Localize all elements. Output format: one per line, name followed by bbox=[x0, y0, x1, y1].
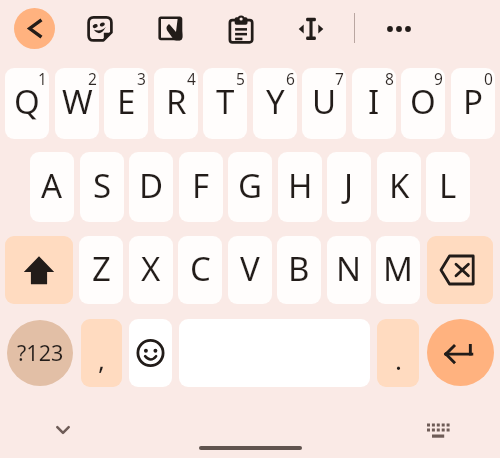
staticText: 0 bbox=[484, 68, 493, 89]
button[interactable]: L bbox=[426, 152, 470, 222]
staticText: Z bbox=[92, 246, 111, 291]
staticText: Y bbox=[266, 79, 285, 124]
staticText: 4 bbox=[187, 68, 196, 89]
staticText: G bbox=[238, 163, 263, 208]
button[interactable]: M bbox=[376, 236, 420, 304]
button[interactable]: J bbox=[327, 152, 371, 222]
button[interactable]: V bbox=[228, 236, 272, 304]
button[interactable]: Back bbox=[14, 8, 55, 49]
staticText: 8 bbox=[385, 68, 394, 89]
button[interactable]: 3 bbox=[104, 68, 148, 139]
button[interactable]: S bbox=[80, 152, 124, 222]
button[interactable]: Enter bbox=[427, 319, 494, 386]
button[interactable]: F bbox=[179, 152, 223, 222]
button[interactable]: GIF bbox=[149, 7, 193, 51]
button[interactable]: 0 bbox=[451, 68, 495, 139]
button[interactable]: X bbox=[129, 236, 173, 304]
button[interactable]: , bbox=[81, 319, 122, 387]
staticText: , bbox=[98, 342, 105, 377]
button[interactable]: 1 bbox=[5, 68, 49, 139]
staticText: H bbox=[288, 163, 313, 208]
staticText: E bbox=[117, 79, 136, 124]
staticText: 3 bbox=[137, 68, 146, 89]
staticText: M bbox=[383, 246, 413, 291]
staticText: R bbox=[166, 79, 187, 124]
button[interactable]: . bbox=[377, 319, 419, 387]
staticText: 9 bbox=[434, 68, 443, 89]
staticText: J bbox=[344, 163, 354, 208]
staticText: 6 bbox=[286, 68, 295, 89]
staticText: T bbox=[216, 79, 235, 124]
button[interactable]: 7 bbox=[302, 68, 346, 139]
staticText: L bbox=[439, 163, 457, 208]
button[interactable]: Backspace bbox=[427, 236, 493, 304]
staticText: X bbox=[141, 246, 161, 291]
button[interactable]: 4 bbox=[154, 68, 198, 139]
button[interactable]: 2 bbox=[55, 68, 99, 139]
staticText: 1 bbox=[38, 68, 47, 89]
staticText: 5 bbox=[236, 68, 245, 89]
staticText: ?123 bbox=[17, 338, 64, 367]
button[interactable]: N bbox=[327, 236, 371, 304]
staticText: . bbox=[395, 342, 402, 377]
staticText: I bbox=[368, 79, 380, 124]
staticText: F bbox=[192, 163, 210, 208]
button[interactable]: B bbox=[277, 236, 321, 304]
button[interactable]: ?123 bbox=[7, 320, 73, 386]
button[interactable]: D bbox=[129, 152, 173, 222]
staticText: V bbox=[240, 246, 260, 291]
staticText: O bbox=[410, 79, 436, 124]
button[interactable]: Move cursor bbox=[289, 7, 333, 51]
button[interactable]: Hide keyboard bbox=[41, 408, 85, 452]
staticText: D bbox=[139, 163, 164, 208]
button[interactable]: A bbox=[30, 152, 74, 222]
button[interactable]: Emoji bbox=[129, 319, 172, 387]
button[interactable]: Clipboard bbox=[219, 7, 263, 51]
staticText: S bbox=[93, 163, 112, 208]
button[interactable]: C bbox=[178, 236, 222, 304]
staticText: W bbox=[62, 79, 93, 124]
button[interactable]: Switch keyboard bbox=[416, 408, 460, 452]
button[interactable]: 6 bbox=[253, 68, 297, 139]
button[interactable]: Shift bbox=[5, 236, 73, 304]
button[interactable]: G bbox=[228, 152, 272, 222]
staticText: A bbox=[41, 163, 63, 208]
button[interactable]: Stickers bbox=[78, 7, 122, 51]
button[interactable]: 9 bbox=[401, 68, 445, 139]
button[interactable]: Z bbox=[79, 236, 123, 304]
button[interactable]: K bbox=[377, 152, 421, 222]
staticText: 2 bbox=[88, 68, 97, 89]
staticText: Q bbox=[14, 79, 40, 124]
staticText: C bbox=[190, 246, 211, 291]
staticText: 7 bbox=[335, 68, 344, 89]
staticText: K bbox=[389, 163, 410, 208]
staticText: U bbox=[312, 79, 337, 124]
button[interactable]: 8 bbox=[352, 68, 396, 139]
button[interactable]: H bbox=[278, 152, 322, 222]
staticText: P bbox=[463, 79, 483, 124]
button[interactable]: More options bbox=[377, 7, 421, 51]
staticText: B bbox=[288, 246, 310, 291]
button[interactable]: 5 bbox=[203, 68, 247, 139]
staticText: N bbox=[336, 246, 362, 291]
